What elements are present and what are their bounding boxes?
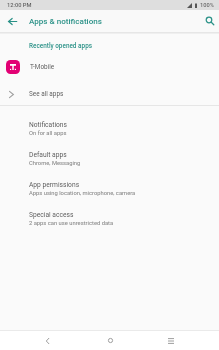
staticText: See all apps bbox=[29, 90, 64, 98]
staticText: Apps & notifications bbox=[29, 16, 102, 25]
button[interactable]: App permissions bbox=[0, 174, 219, 204]
staticText: Notifications bbox=[29, 121, 68, 129]
staticText: Special access bbox=[29, 211, 74, 219]
button[interactable]: Back bbox=[29, 331, 65, 350]
button[interactable]: Notifications bbox=[0, 114, 219, 144]
button[interactable]: Recent apps bbox=[153, 331, 189, 350]
button[interactable]: Special access bbox=[0, 204, 219, 234]
staticText: On for all apps bbox=[29, 130, 67, 137]
staticText: 12:00 PM bbox=[7, 2, 32, 9]
staticText: Chrome, Messaging bbox=[29, 160, 81, 167]
staticText: App permissions bbox=[29, 181, 80, 189]
button[interactable]: Back bbox=[2, 10, 23, 32]
staticText: 2 apps can use unrestricted data bbox=[29, 220, 114, 227]
staticText: Apps using location, microphone, camera bbox=[29, 190, 136, 197]
button[interactable]: Search bbox=[199, 10, 219, 32]
button[interactable]: Home bbox=[92, 331, 128, 350]
button[interactable]: See all apps bbox=[0, 83, 219, 105]
button[interactable]: Default apps bbox=[0, 144, 219, 174]
staticText: 100% bbox=[200, 2, 214, 9]
button[interactable]: T-Mobile bbox=[0, 55, 219, 79]
staticText: Recently opened apps bbox=[29, 42, 93, 50]
staticText: Default apps bbox=[29, 151, 67, 159]
staticText: T-Mobile bbox=[30, 63, 55, 71]
